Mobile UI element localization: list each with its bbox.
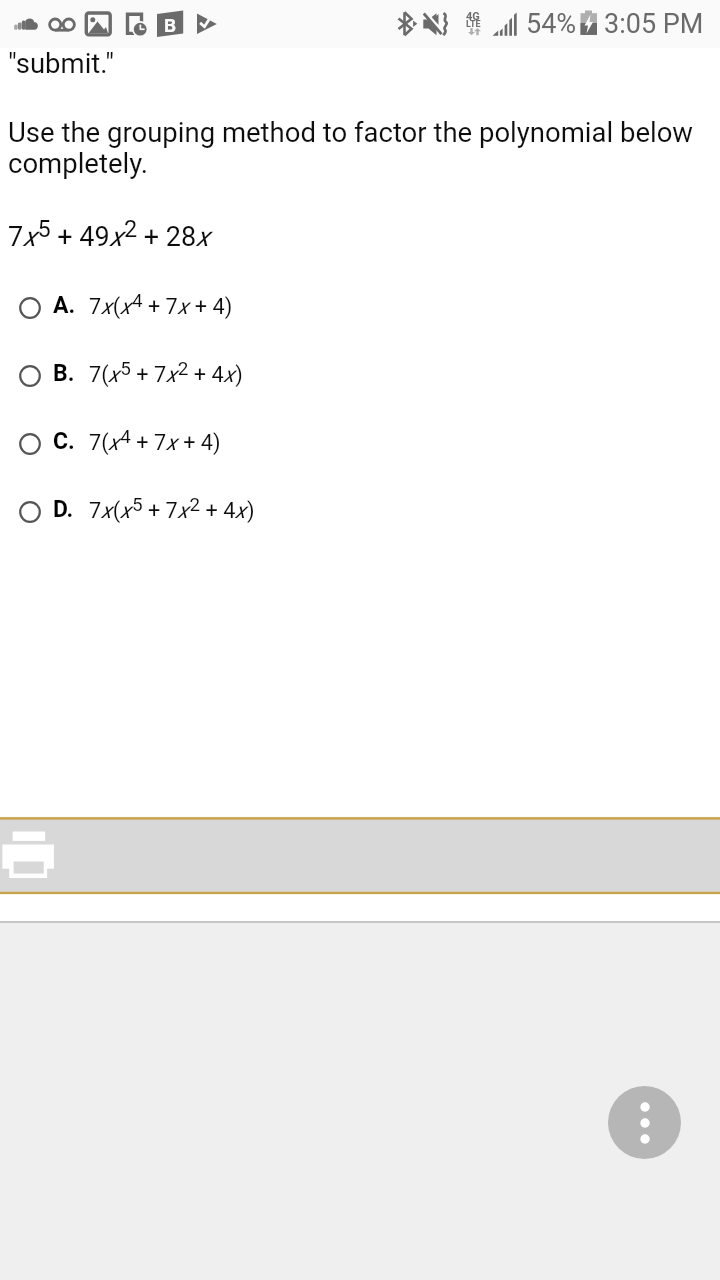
staticText: A. [53, 292, 76, 319]
button[interactable]: More options [608, 1086, 681, 1159]
staticText: B. [53, 360, 75, 387]
staticText: D. [53, 496, 74, 523]
button[interactable]: B. [0, 341, 720, 409]
staticText: C. [53, 428, 75, 455]
staticText: LTE [466, 19, 481, 30]
button[interactable]: A. [0, 273, 720, 341]
button[interactable]: Print [0, 816, 720, 895]
staticText: 7x (x 4 + 7x + 4) [89, 289, 233, 319]
staticText: 7(x 5 + 7x 2 + 4x ) [89, 357, 243, 387]
staticText: 3:05 PM [604, 8, 704, 40]
staticText: B [164, 14, 177, 36]
staticText: 54% [526, 8, 577, 40]
staticText: 7x 5 + 49x 2 + 28x [8, 215, 211, 253]
button[interactable]: D. [0, 477, 720, 545]
staticText: 7(x 4 + 7x + 4) [89, 425, 221, 455]
staticText: 4G [466, 10, 480, 23]
staticText: 7x (x 5 + 7x 2 + 4x ) [89, 493, 255, 523]
staticText: Use the grouping method to factor the po… [8, 116, 710, 179]
staticText: "submit." [8, 47, 115, 79]
button[interactable]: C. [0, 409, 720, 477]
